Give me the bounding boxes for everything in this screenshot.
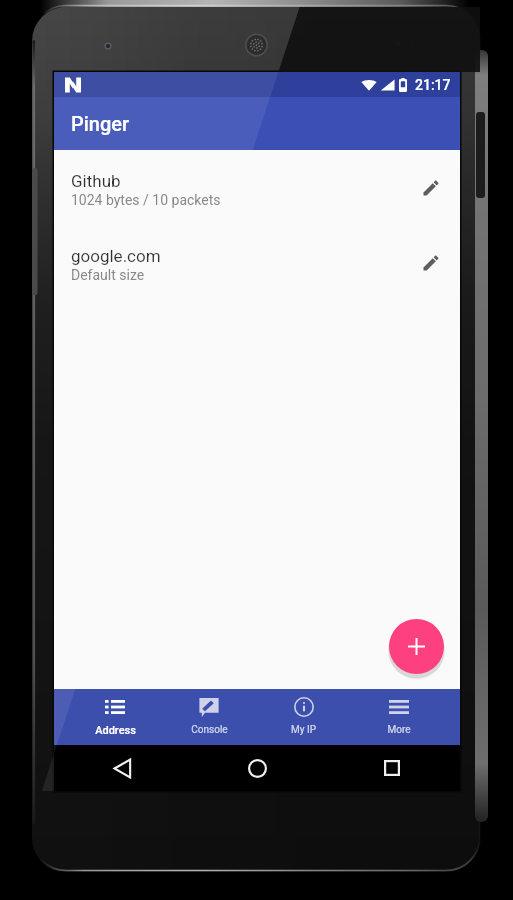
staticText: Default size	[71, 267, 145, 283]
staticText: Pinger	[71, 112, 130, 135]
button[interactable]: google.com	[54, 225, 460, 300]
staticText: My IP	[291, 724, 316, 736]
staticText: Address	[95, 724, 136, 737]
button[interactable]: Address	[68, 689, 162, 745]
staticText: Console	[191, 724, 228, 736]
staticText: google.com	[71, 246, 161, 266]
button[interactable]: More	[351, 689, 446, 745]
button[interactable]: Edit Github	[407, 164, 455, 212]
button[interactable]: Add address	[389, 619, 444, 674]
button[interactable]: Back	[101, 747, 143, 789]
button[interactable]: Home	[236, 747, 278, 789]
staticText: More	[387, 724, 411, 736]
button[interactable]: Console	[162, 689, 256, 745]
staticText: 21:17	[415, 77, 451, 93]
button[interactable]: Recent apps	[371, 747, 413, 789]
button[interactable]: Github	[54, 150, 460, 225]
button[interactable]: Edit google.com	[407, 239, 455, 287]
button[interactable]: My IP	[256, 689, 351, 745]
staticText: 1024 bytes / 10 packets	[71, 192, 221, 208]
staticText: Github	[71, 171, 121, 191]
